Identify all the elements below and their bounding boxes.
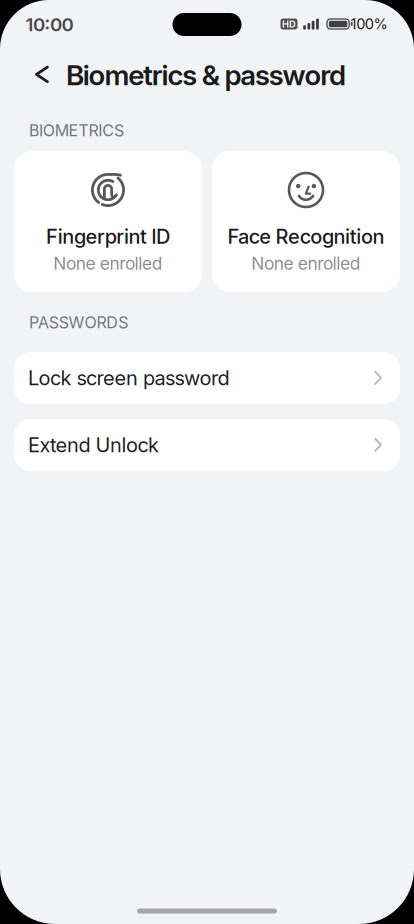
button[interactable]: Face Recognition <box>212 151 400 292</box>
staticText: Lock screen password <box>28 366 229 390</box>
staticText: Biometrics & password <box>66 58 346 91</box>
button[interactable]: Fingerprint ID <box>14 151 202 292</box>
staticText: Face Recognition <box>227 225 384 248</box>
staticText: BIOMETRICS <box>29 121 124 140</box>
staticText: HD <box>282 18 296 29</box>
staticText: None enrolled <box>53 253 163 274</box>
staticText: 10:00 <box>25 13 73 35</box>
button[interactable]: Extend Unlock <box>14 419 400 471</box>
staticText: None enrolled <box>251 253 361 274</box>
staticText: 100% <box>350 15 387 33</box>
staticText: Extend Unlock <box>28 433 159 457</box>
button[interactable]: Lock screen password <box>14 352 400 404</box>
staticText: PASSWORDS <box>29 313 128 332</box>
button[interactable]: Back <box>23 55 60 93</box>
staticText: Fingerprint ID <box>46 225 170 248</box>
